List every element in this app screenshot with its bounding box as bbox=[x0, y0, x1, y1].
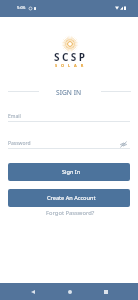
button[interactable]: Forgot Password? bbox=[42, 208, 99, 218]
button[interactable]: Recent apps bbox=[95, 283, 116, 300]
button[interactable]: Home bbox=[59, 283, 80, 300]
staticText: Email bbox=[8, 113, 21, 120]
staticText: SCSP bbox=[54, 50, 88, 64]
staticText: Sign In bbox=[62, 168, 81, 176]
button[interactable]: Create An Account bbox=[8, 189, 130, 207]
staticText: Password bbox=[8, 140, 31, 147]
staticText: 5:06 bbox=[17, 5, 26, 11]
staticText: Create An Account bbox=[47, 194, 96, 202]
button[interactable]: Back bbox=[22, 283, 43, 300]
button[interactable]: Email bbox=[8, 113, 130, 121]
button[interactable]: Sign In bbox=[8, 163, 130, 181]
button[interactable]: Password bbox=[8, 140, 130, 148]
staticText: SOLAR bbox=[55, 63, 88, 68]
staticText: SIGN IN bbox=[56, 88, 81, 97]
button[interactable]: Show password bbox=[118, 140, 128, 148]
